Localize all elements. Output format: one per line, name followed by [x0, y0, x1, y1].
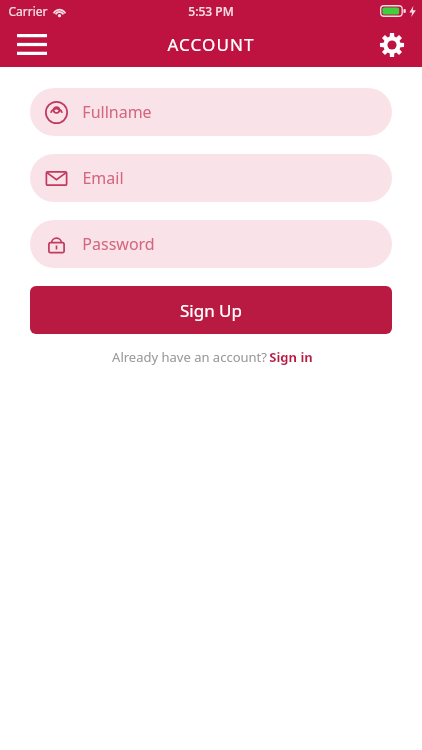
- button[interactable]: Menu: [8, 22, 56, 67]
- staticText: 5:53 PM: [188, 3, 234, 19]
- staticText: ACCOUNT: [167, 33, 255, 56]
- button[interactable]: Sign in: [269, 348, 313, 366]
- staticText: Sign Up: [180, 299, 242, 322]
- staticText: Carrier: [8, 3, 48, 19]
- button[interactable]: Password: [30, 220, 392, 268]
- staticText: Password: [82, 233, 155, 255]
- button[interactable]: Settings: [370, 23, 414, 67]
- staticText: Sign in: [269, 348, 313, 366]
- staticText: Already have an account?: [110, 348, 269, 366]
- button[interactable]: Fullname: [30, 88, 392, 136]
- staticText: Fullname: [82, 101, 152, 123]
- staticText: Email: [82, 167, 124, 189]
- button[interactable]: Sign Up: [30, 286, 392, 334]
- button[interactable]: Email: [30, 154, 392, 202]
